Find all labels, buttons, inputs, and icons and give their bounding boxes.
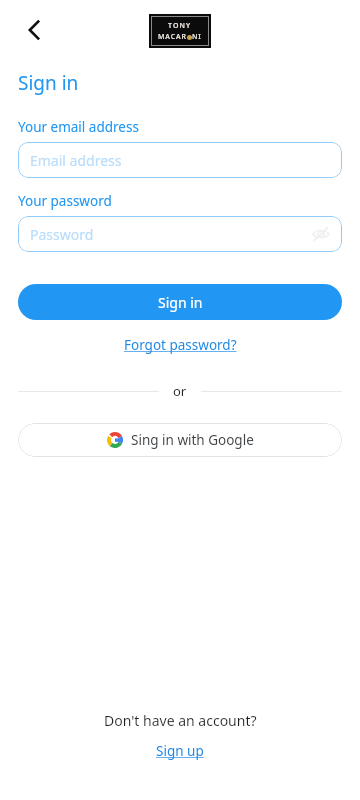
button[interactable]: Email address <box>18 142 342 178</box>
staticText: Email address <box>30 151 122 170</box>
staticText: Don't have an account? <box>104 711 257 730</box>
button[interactable]: Password <box>18 216 342 252</box>
button[interactable]: Forgot password? <box>118 334 243 356</box>
button[interactable]: Sing in with Google <box>18 423 342 457</box>
staticText: Sign in <box>158 293 203 312</box>
staticText: Password <box>30 225 94 244</box>
staticText: Sing in with Google <box>131 431 254 449</box>
staticText: or <box>173 382 187 400</box>
staticText: MACAR <box>158 32 187 42</box>
button[interactable]: Sign up <box>148 740 212 762</box>
staticText: Your email address <box>18 118 139 136</box>
staticText: Sign up <box>156 742 204 760</box>
staticText: NI <box>192 32 202 42</box>
staticText: Sign in <box>18 70 79 96</box>
button[interactable]: Back <box>12 8 56 52</box>
staticText: Forgot password? <box>124 336 237 354</box>
staticText: TONY <box>168 21 192 31</box>
button[interactable]: Show password <box>310 223 332 245</box>
button[interactable]: Sign in <box>18 284 342 320</box>
staticText: Your password <box>18 192 112 210</box>
